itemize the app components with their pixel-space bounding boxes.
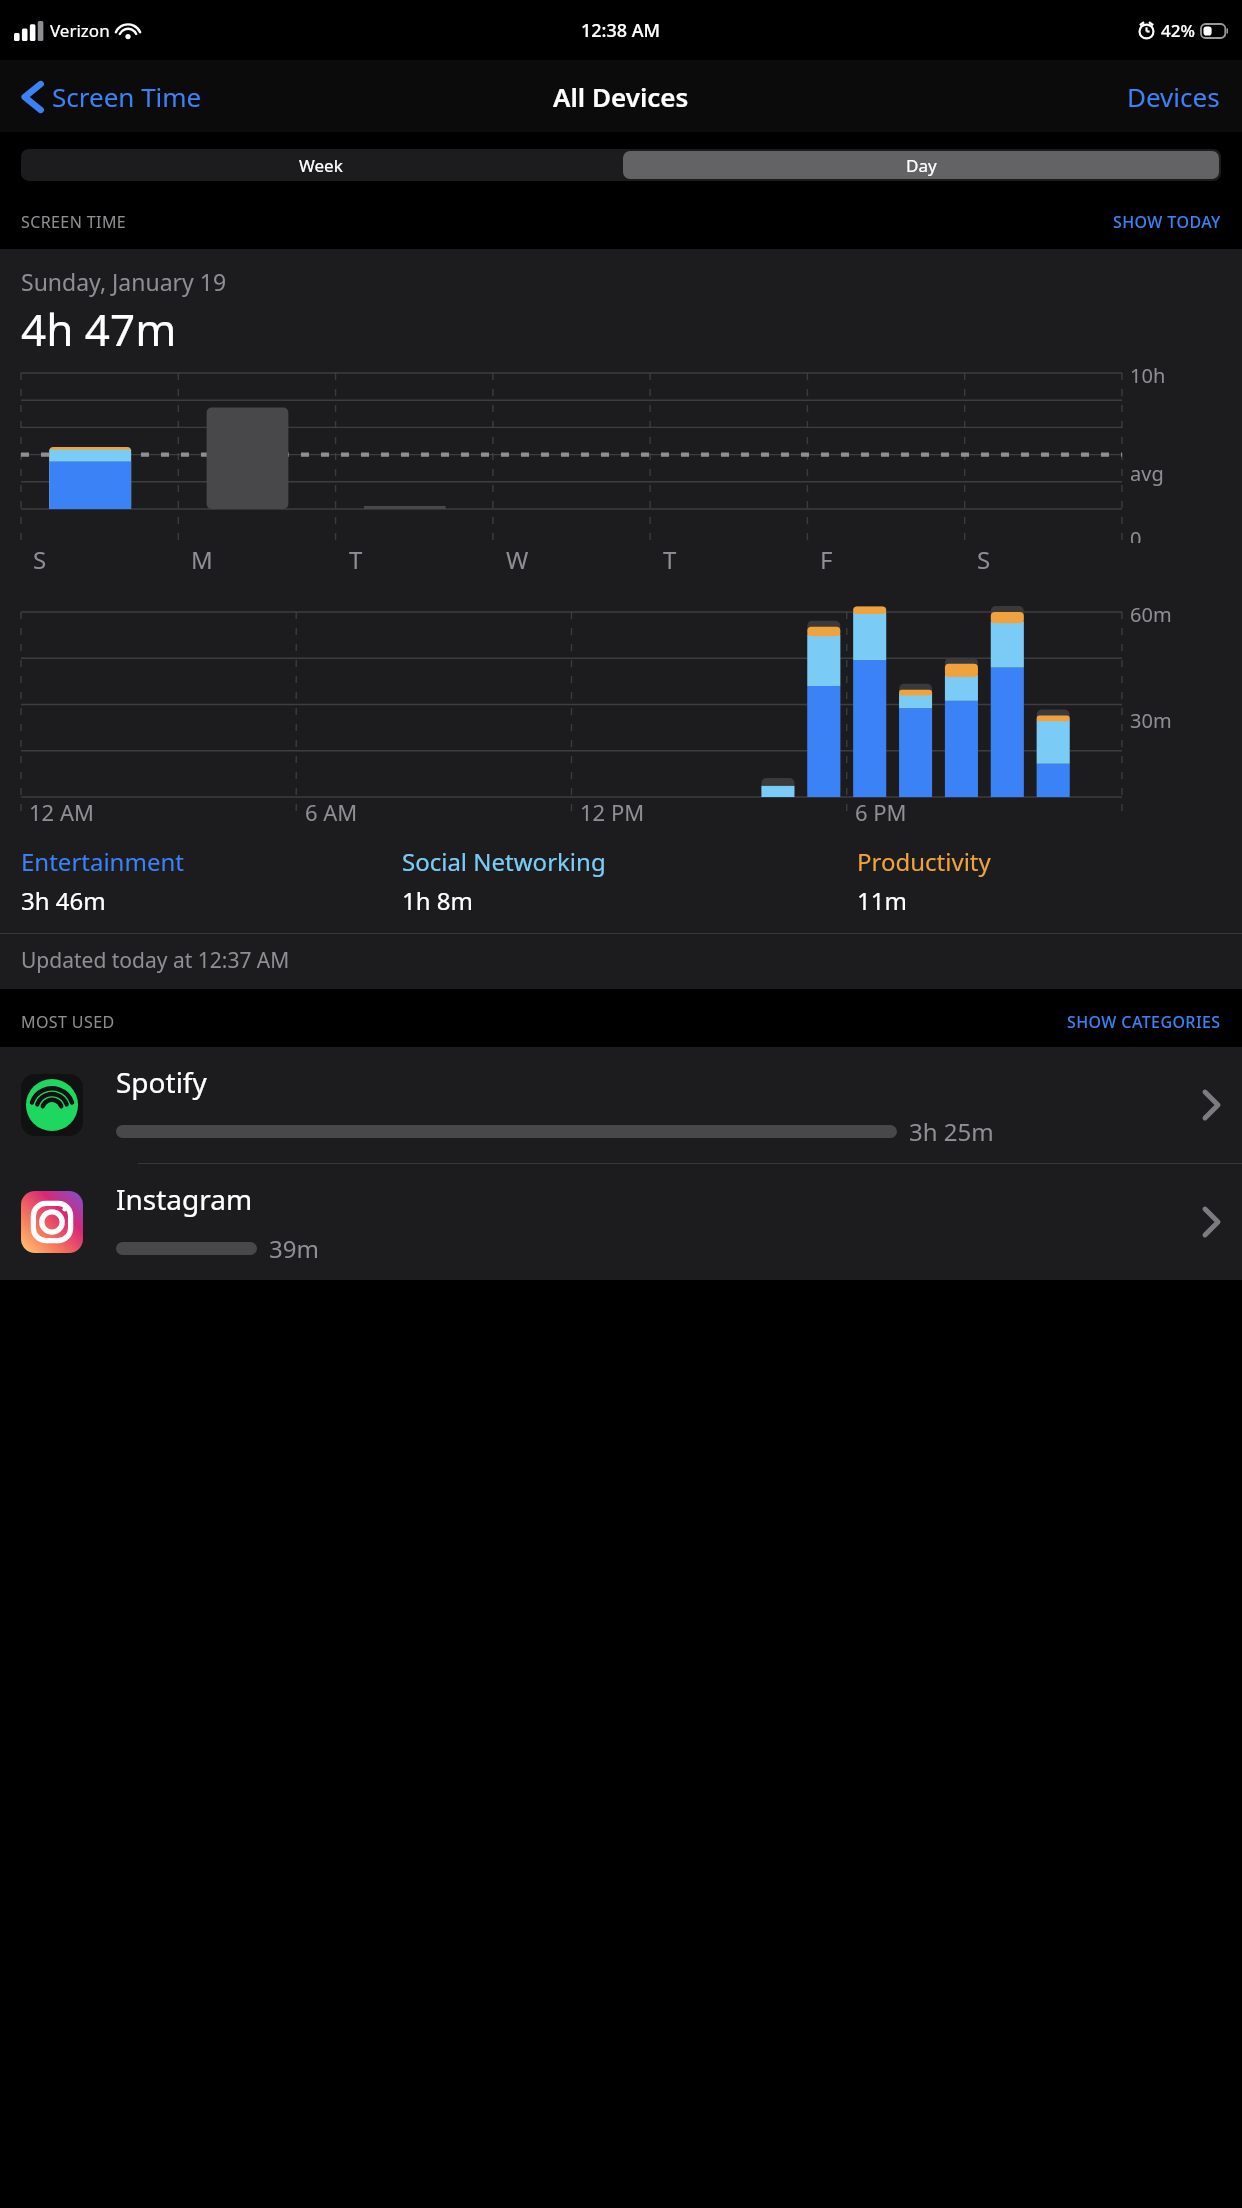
staticText: Sunday, January 19 (21, 266, 227, 297)
staticText: avg (1130, 460, 1164, 487)
staticText: Spotify (116, 1063, 207, 1101)
button[interactable]: Productivity (857, 845, 1221, 917)
other: Open Spotify details (1201, 1088, 1221, 1122)
staticText: F (820, 543, 833, 576)
staticText: 11m (857, 884, 907, 917)
staticText: Screen Time (52, 79, 202, 114)
button[interactable]: Spotify (0, 1047, 1242, 1163)
button[interactable]: Week (21, 149, 621, 181)
staticText: 12 PM (580, 797, 645, 827)
staticText: 60m (1130, 601, 1172, 628)
staticText: Instagram (116, 1180, 253, 1218)
staticText: S (33, 543, 47, 576)
staticText: 12 AM (29, 797, 94, 827)
staticText: 3h 25m (909, 1115, 994, 1148)
staticText: Week (299, 154, 343, 177)
button[interactable]: Social Networking (402, 845, 857, 917)
button[interactable]: SHOW CATEGORIES (1067, 1011, 1221, 1033)
button[interactable]: Day (623, 151, 1219, 179)
staticText: Entertainment (21, 845, 184, 878)
staticText: All Devices (553, 79, 689, 114)
staticText: 0 (1130, 525, 1142, 543)
staticText: 10h (1130, 362, 1166, 389)
staticText: S (977, 543, 991, 576)
other: Open Instagram details (1201, 1205, 1221, 1239)
staticText: 6 PM (855, 797, 907, 827)
staticText: 6 AM (305, 797, 358, 827)
staticText: Verizon (50, 19, 110, 42)
staticText: 12:38 AM (581, 18, 661, 43)
staticText: T (663, 543, 677, 576)
staticText: MOST USED (21, 1011, 115, 1033)
staticText: Day (906, 154, 937, 177)
staticText: SCREEN TIME (21, 211, 127, 233)
staticText: T (349, 543, 363, 576)
button[interactable]: Screen Time (22, 79, 202, 114)
staticText: Updated today at 12:37 AM (21, 946, 290, 975)
button[interactable]: SHOW TODAY (1113, 211, 1221, 233)
staticText: M (191, 543, 213, 576)
staticText: Productivity (857, 845, 991, 878)
staticText: 1h 8m (402, 884, 473, 917)
staticText: 30m (1130, 707, 1172, 734)
button[interactable]: Instagram (0, 1164, 1242, 1280)
staticText: 3h 46m (21, 884, 106, 917)
button[interactable]: Entertainment (21, 845, 402, 917)
staticText: W (506, 543, 529, 576)
staticText: 42% (1161, 19, 1195, 42)
staticText: 39m (269, 1232, 319, 1265)
staticText: Social Networking (402, 845, 606, 878)
button[interactable]: Devices (1127, 79, 1220, 114)
staticText: 4h 47m (21, 299, 177, 359)
